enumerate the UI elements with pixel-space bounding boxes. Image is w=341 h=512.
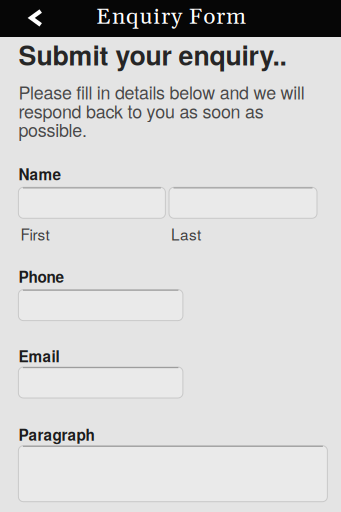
staticText: respond back to you as soon as bbox=[18, 98, 264, 123]
staticText: Submit your enquiry.. bbox=[18, 35, 286, 74]
staticText: Phone bbox=[18, 266, 64, 288]
staticText: Name bbox=[18, 163, 61, 185]
staticText: First bbox=[20, 223, 49, 245]
button[interactable]: Back bbox=[14, 0, 58, 36]
staticText: Paragraph bbox=[18, 424, 94, 446]
staticText: Enquiry Form bbox=[96, 3, 246, 31]
staticText: Please fill in details below and we will bbox=[18, 79, 305, 105]
staticText: possible. bbox=[18, 116, 87, 142]
staticText: Last bbox=[171, 223, 201, 245]
staticText: Email bbox=[18, 345, 59, 367]
